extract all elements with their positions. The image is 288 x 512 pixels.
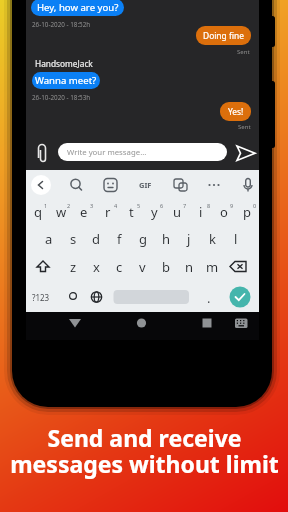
button[interactable]: [65, 174, 87, 196]
button[interactable]: [62, 288, 82, 306]
button[interactable]: e: [73, 203, 95, 221]
button[interactable]: z: [62, 258, 84, 276]
staticText: c: [116, 258, 123, 276]
staticText: 6: [160, 202, 164, 209]
staticText: 3: [90, 202, 94, 209]
staticText: 2: [67, 202, 71, 209]
button[interactable]: h: [155, 230, 177, 248]
staticText: 9: [230, 202, 234, 209]
staticText: o: [220, 203, 228, 221]
staticText: f: [117, 230, 122, 248]
button[interactable]: v: [131, 258, 153, 276]
button[interactable]: c: [108, 258, 130, 276]
button[interactable]: Write your message...: [58, 143, 227, 161]
button[interactable]: y: [143, 203, 165, 221]
button[interactable]: [86, 288, 106, 306]
staticText: Yes!: [228, 106, 244, 117]
button[interactable]: n: [178, 258, 200, 276]
button[interactable]: Doing fine: [196, 26, 251, 45]
button[interactable]: [197, 314, 217, 338]
button[interactable]: a: [38, 230, 60, 248]
staticText: Sent: [238, 123, 251, 131]
button[interactable]: [203, 174, 225, 196]
button[interactable]: l: [225, 230, 247, 248]
staticText: h: [162, 230, 171, 248]
button[interactable]: t: [120, 203, 142, 221]
staticText: x: [93, 258, 100, 276]
staticText: Sent: [237, 48, 250, 56]
button[interactable]: u: [166, 203, 188, 221]
button[interactable]: Hey, how are you?: [31, 0, 124, 16]
staticText: b: [162, 258, 170, 276]
button[interactable]: m: [201, 258, 223, 276]
button[interactable]: GIF: [134, 179, 156, 191]
button[interactable]: k: [201, 230, 223, 248]
staticText: m: [206, 258, 219, 276]
staticText: l: [234, 230, 238, 248]
button[interactable]: [100, 174, 122, 196]
button[interactable]: [114, 288, 190, 306]
staticText: k: [209, 230, 216, 248]
staticText: s: [70, 230, 77, 248]
staticText: a: [45, 230, 53, 248]
button[interactable]: w: [50, 203, 72, 221]
staticText: 5: [137, 202, 141, 209]
button[interactable]: f: [108, 230, 130, 248]
staticText: Send and receive messages without limit: [10, 422, 279, 480]
button[interactable]: .: [202, 289, 216, 305]
staticText: i: [199, 203, 203, 221]
button[interactable]: Yes!: [220, 102, 251, 121]
staticText: Doing fine: [203, 30, 244, 41]
staticText: 7: [183, 202, 187, 209]
staticText: 26-10-2020 - 18:53h: [32, 93, 91, 101]
staticText: .: [207, 289, 211, 305]
button[interactable]: Wanna meet?: [32, 72, 100, 89]
staticText: GIF: [139, 180, 152, 190]
button[interactable]: j: [178, 230, 200, 248]
staticText: w: [56, 203, 67, 221]
button[interactable]: o: [213, 203, 235, 221]
staticText: u: [173, 203, 182, 221]
button[interactable]: [231, 314, 251, 338]
button[interactable]: [65, 314, 85, 338]
button[interactable]: [32, 142, 50, 164]
staticText: Write your message...: [67, 147, 147, 158]
button[interactable]: [229, 287, 250, 308]
staticText: q: [34, 203, 42, 221]
staticText: d: [92, 230, 100, 248]
button[interactable]: g: [132, 230, 154, 248]
staticText: Hey, how are you?: [37, 1, 119, 14]
button[interactable]: s: [62, 230, 84, 248]
staticText: p: [243, 203, 251, 221]
staticText: HandsomeJack: [35, 58, 93, 69]
staticText: t: [129, 203, 134, 221]
staticText: 26-10-2020 - 18:52h: [32, 20, 91, 28]
staticText: y: [151, 203, 158, 221]
staticText: 4: [114, 202, 118, 209]
button[interactable]: [233, 142, 259, 164]
staticText: n: [185, 258, 194, 276]
button[interactable]: [237, 174, 259, 196]
button[interactable]: p: [236, 203, 258, 221]
button[interactable]: r: [97, 203, 119, 221]
button[interactable]: ?123: [30, 291, 52, 303]
button[interactable]: q: [27, 203, 49, 221]
staticText: e: [80, 203, 88, 221]
staticText: ?123: [32, 292, 50, 303]
button[interactable]: b: [155, 258, 177, 276]
staticText: 8: [207, 202, 211, 209]
staticText: j: [187, 230, 191, 248]
button[interactable]: [226, 258, 254, 276]
button[interactable]: i: [190, 203, 212, 221]
staticText: 1: [44, 202, 48, 209]
staticText: z: [70, 258, 77, 276]
button[interactable]: [132, 314, 152, 338]
button[interactable]: [31, 175, 51, 195]
button[interactable]: [32, 258, 58, 276]
staticText: v: [139, 258, 146, 276]
staticText: 0: [253, 202, 257, 209]
button[interactable]: d: [85, 230, 107, 248]
button[interactable]: x: [85, 258, 107, 276]
button[interactable]: [169, 174, 191, 196]
staticText: g: [139, 230, 147, 248]
